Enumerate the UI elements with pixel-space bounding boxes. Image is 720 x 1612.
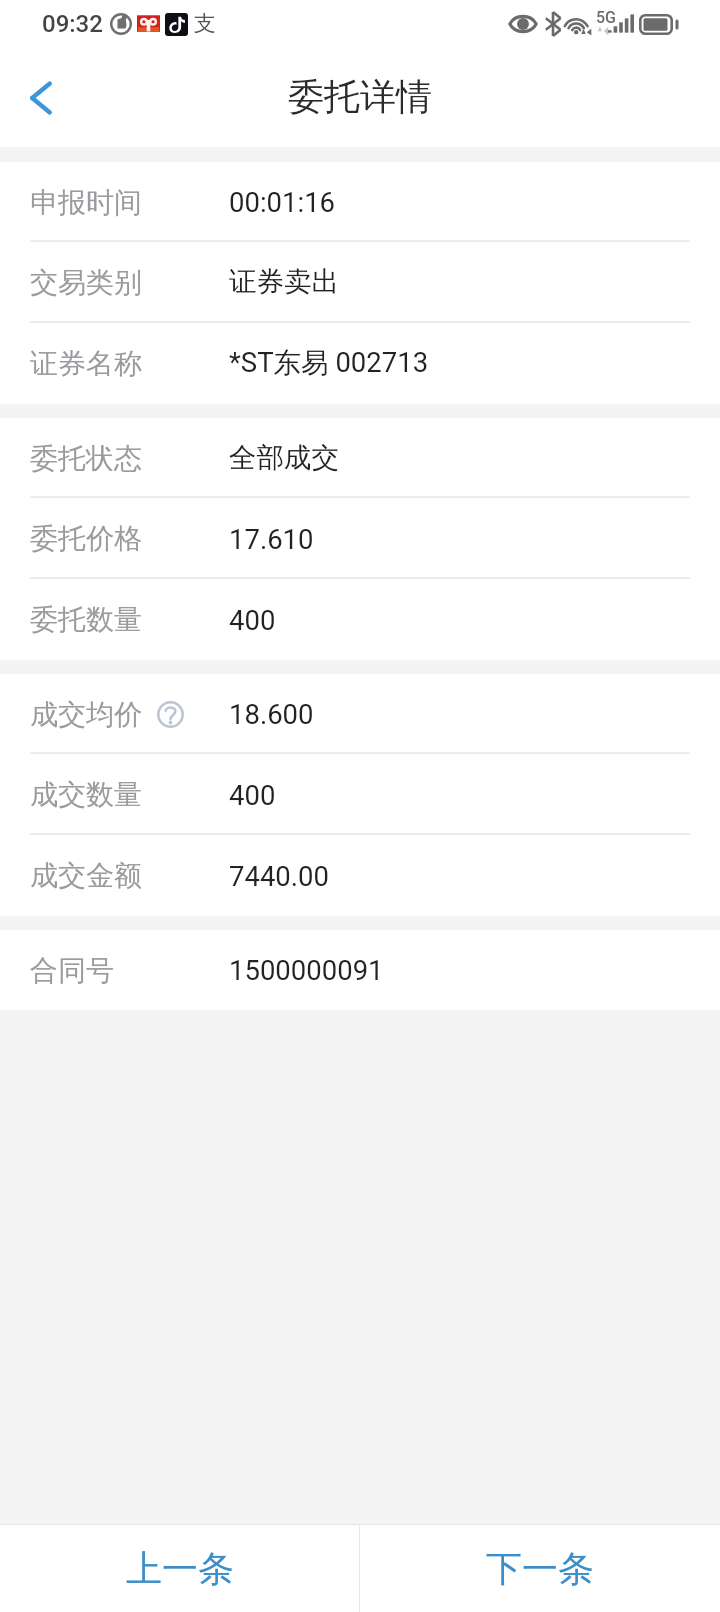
staticText: 成交数量	[30, 777, 142, 812]
staticText: 1500000091	[229, 954, 384, 986]
staticText: 400	[229, 779, 276, 811]
staticText: *ST东易 002713	[229, 346, 429, 381]
staticText: 17.610	[229, 523, 314, 555]
staticText: 申报时间	[30, 185, 142, 220]
staticText: 09:32	[42, 10, 103, 38]
staticText: 支	[194, 10, 216, 38]
button[interactable]: 下一条	[360, 1525, 720, 1612]
staticText: 委托价格	[30, 521, 142, 556]
staticText: 全部成交	[229, 441, 339, 476]
staticText: 交易类别	[30, 265, 142, 300]
button[interactable]: Help	[157, 701, 184, 728]
staticText: 委托状态	[30, 441, 142, 476]
staticText: 委托数量	[30, 602, 142, 637]
button[interactable]: Back	[0, 56, 82, 147]
staticText: 成交金额	[30, 858, 142, 893]
staticText: 成交均价	[30, 697, 142, 732]
staticText: 下一条	[486, 1546, 594, 1591]
staticText: 合同号	[30, 953, 114, 988]
staticText: 7440.00	[229, 860, 329, 892]
staticText: 00:01:16	[229, 186, 336, 218]
staticText: 证券名称	[30, 346, 142, 381]
staticText: 委托详情	[288, 74, 432, 119]
staticText: 400	[229, 604, 276, 636]
staticText: 证券卖出	[229, 265, 339, 300]
staticText: 18.600	[229, 698, 314, 730]
staticText: 上一条	[126, 1546, 234, 1591]
button[interactable]: 上一条	[0, 1525, 359, 1612]
staticText: 5G	[596, 8, 616, 27]
